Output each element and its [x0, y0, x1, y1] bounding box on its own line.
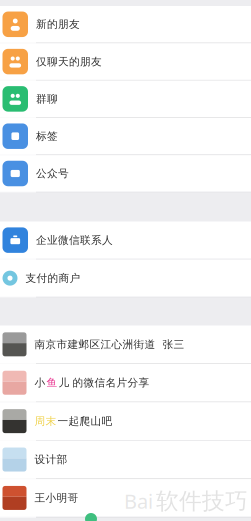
button[interactable]: 周末: [0, 402, 251, 441]
staticText: 鱼: [46, 376, 57, 389]
staticText: 仅聊天的朋友: [36, 55, 102, 68]
staticText: 公众号: [36, 167, 69, 180]
button[interactable]: 南京市建邺区江心洲街道: [0, 325, 251, 364]
staticText: 企业微信联系人: [36, 234, 113, 247]
staticText: 张三: [162, 338, 184, 351]
staticText: 群聊: [36, 92, 58, 105]
button[interactable]: 支付的商户: [0, 259, 251, 297]
button[interactable]: 企业微信联系人: [0, 221, 251, 259]
button[interactable]: 仅聊天的朋友: [0, 43, 251, 81]
staticText: 一起爬山吧: [57, 415, 112, 428]
button[interactable]: 公众号: [0, 155, 251, 192]
staticText: 支付的商户: [25, 272, 80, 285]
staticText: 周末: [34, 415, 56, 428]
button[interactable]: 新的朋友: [0, 6, 251, 43]
staticText: 软件技巧: [156, 487, 248, 515]
staticText: 新的朋友: [36, 18, 80, 31]
staticText: 儿 的微信名片分享: [58, 376, 149, 389]
staticText: 标签: [36, 130, 58, 143]
button[interactable]: 标签: [0, 118, 251, 155]
staticText: 设计部: [34, 453, 67, 466]
staticText: Bai: [124, 488, 153, 514]
button[interactable]: 群聊: [0, 81, 251, 118]
staticText: 南京市建邺区江心洲街道: [34, 338, 155, 351]
button[interactable]: 设计部: [0, 441, 251, 479]
button[interactable]: 王小明哥: [0, 479, 251, 517]
button[interactable]: 小: [0, 364, 251, 402]
staticText: 王小明哥: [34, 491, 78, 504]
staticText: 小: [34, 376, 45, 389]
